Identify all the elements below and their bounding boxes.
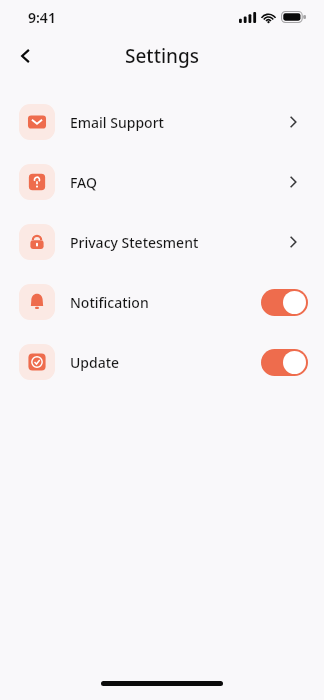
button[interactable]: Back bbox=[8, 38, 44, 74]
staticText: Email Support bbox=[70, 113, 278, 132]
button[interactable]: Update bbox=[0, 332, 324, 392]
button[interactable]: FAQ bbox=[0, 152, 324, 212]
button[interactable]: Privacy Stetesment bbox=[0, 212, 324, 272]
button[interactable]: Open Email Support bbox=[278, 107, 308, 137]
staticText: 9:41 bbox=[28, 8, 56, 27]
button[interactable]: Notification bbox=[0, 272, 324, 332]
button[interactable]: Open FAQ bbox=[278, 167, 308, 197]
staticText: Privacy Stetesment bbox=[70, 233, 278, 252]
button[interactable]: Email Support bbox=[0, 92, 324, 152]
button[interactable]: Notification toggle, on bbox=[261, 289, 308, 316]
staticText: Notification bbox=[70, 293, 261, 312]
staticText: Update bbox=[70, 353, 261, 372]
staticText: FAQ bbox=[70, 173, 278, 192]
staticText: Settings bbox=[125, 43, 199, 69]
button[interactable]: Update toggle, on bbox=[261, 349, 308, 376]
button[interactable]: Open Privacy Stetesment bbox=[278, 227, 308, 257]
